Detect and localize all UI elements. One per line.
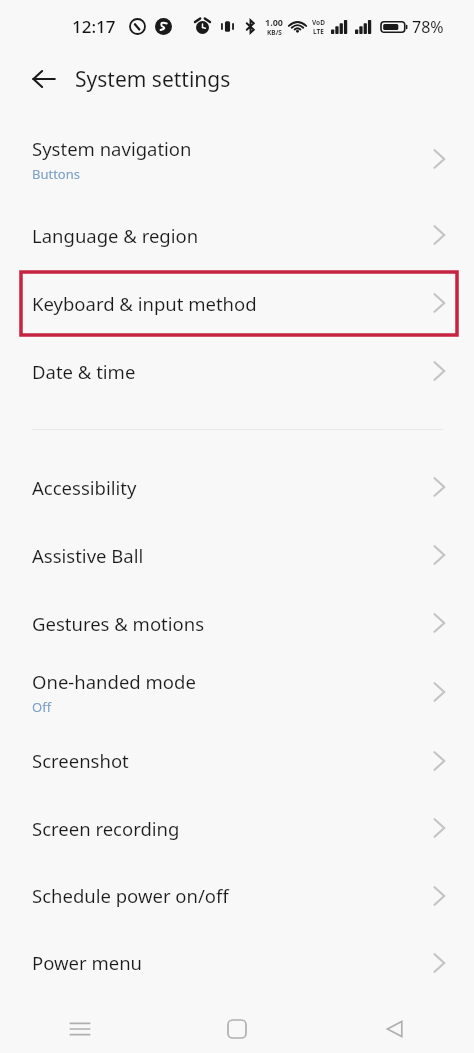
button[interactable]: Recent apps bbox=[0, 1005, 158, 1053]
button[interactable]: Gestures & motions bbox=[0, 589, 474, 657]
staticText: VoD bbox=[312, 18, 325, 27]
staticText: Keyboard & input method bbox=[32, 291, 257, 316]
staticText: Buttons bbox=[32, 165, 80, 183]
staticText: Assistive Ball bbox=[32, 543, 144, 568]
staticText: Gestures & motions bbox=[32, 611, 205, 636]
button[interactable]: Keyboard & input method bbox=[0, 269, 474, 337]
button[interactable]: Date & time bbox=[0, 337, 474, 405]
staticText: Language & region bbox=[32, 223, 199, 248]
staticText: 12:17 bbox=[72, 15, 116, 38]
staticText: One-handed mode bbox=[32, 669, 196, 694]
button[interactable]: One-handed mode bbox=[0, 657, 474, 727]
staticText: Screenshot bbox=[32, 748, 129, 773]
staticText: Screen recording bbox=[32, 816, 180, 841]
button[interactable]: Home bbox=[158, 1005, 316, 1053]
button[interactable]: System navigation bbox=[0, 122, 474, 196]
button[interactable]: Back bbox=[316, 1005, 474, 1053]
staticText: LTE bbox=[313, 27, 324, 36]
staticText: System navigation bbox=[32, 136, 192, 161]
button[interactable]: Schedule power on/off bbox=[0, 862, 474, 929]
staticText: Date & time bbox=[32, 359, 136, 384]
staticText: Accessibility bbox=[32, 475, 137, 500]
button[interactable]: Language & region bbox=[0, 201, 474, 269]
button[interactable]: Power menu bbox=[0, 929, 474, 996]
staticText: 78% bbox=[412, 16, 444, 38]
staticText: Power menu bbox=[32, 950, 143, 975]
staticText: System settings bbox=[75, 65, 231, 94]
staticText: Off bbox=[32, 698, 52, 716]
button[interactable]: Accessibility bbox=[0, 453, 474, 521]
staticText: 1.00 bbox=[265, 16, 283, 28]
button[interactable]: Screenshot bbox=[0, 727, 474, 794]
staticText: Schedule power on/off bbox=[32, 883, 229, 908]
staticText: KB/S bbox=[267, 28, 282, 37]
button[interactable]: Assistive Ball bbox=[0, 521, 474, 589]
button[interactable]: Screen recording bbox=[0, 794, 474, 862]
button[interactable]: Back bbox=[21, 56, 67, 102]
